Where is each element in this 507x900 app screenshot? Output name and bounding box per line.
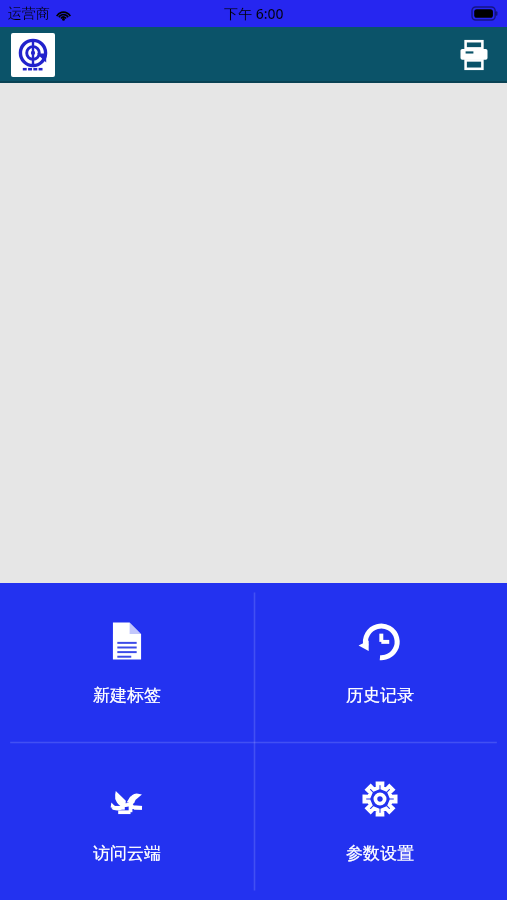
staticText: 下午 6:00 [224, 4, 284, 23]
staticText: 参数设置 [346, 843, 414, 864]
button[interactable]: Print [453, 34, 495, 76]
button[interactable]: Logo [11, 33, 55, 77]
staticText: 运营商 [8, 5, 50, 23]
button[interactable]: 访问云端 [0, 741, 253, 900]
button[interactable]: 历史记录 [253, 583, 507, 741]
staticText: 新建标签 [93, 685, 161, 706]
staticText: 历史记录 [346, 685, 414, 706]
button[interactable]: 参数设置 [253, 741, 507, 900]
button[interactable]: 新建标签 [0, 583, 253, 741]
staticText: 访问云端 [93, 843, 161, 864]
